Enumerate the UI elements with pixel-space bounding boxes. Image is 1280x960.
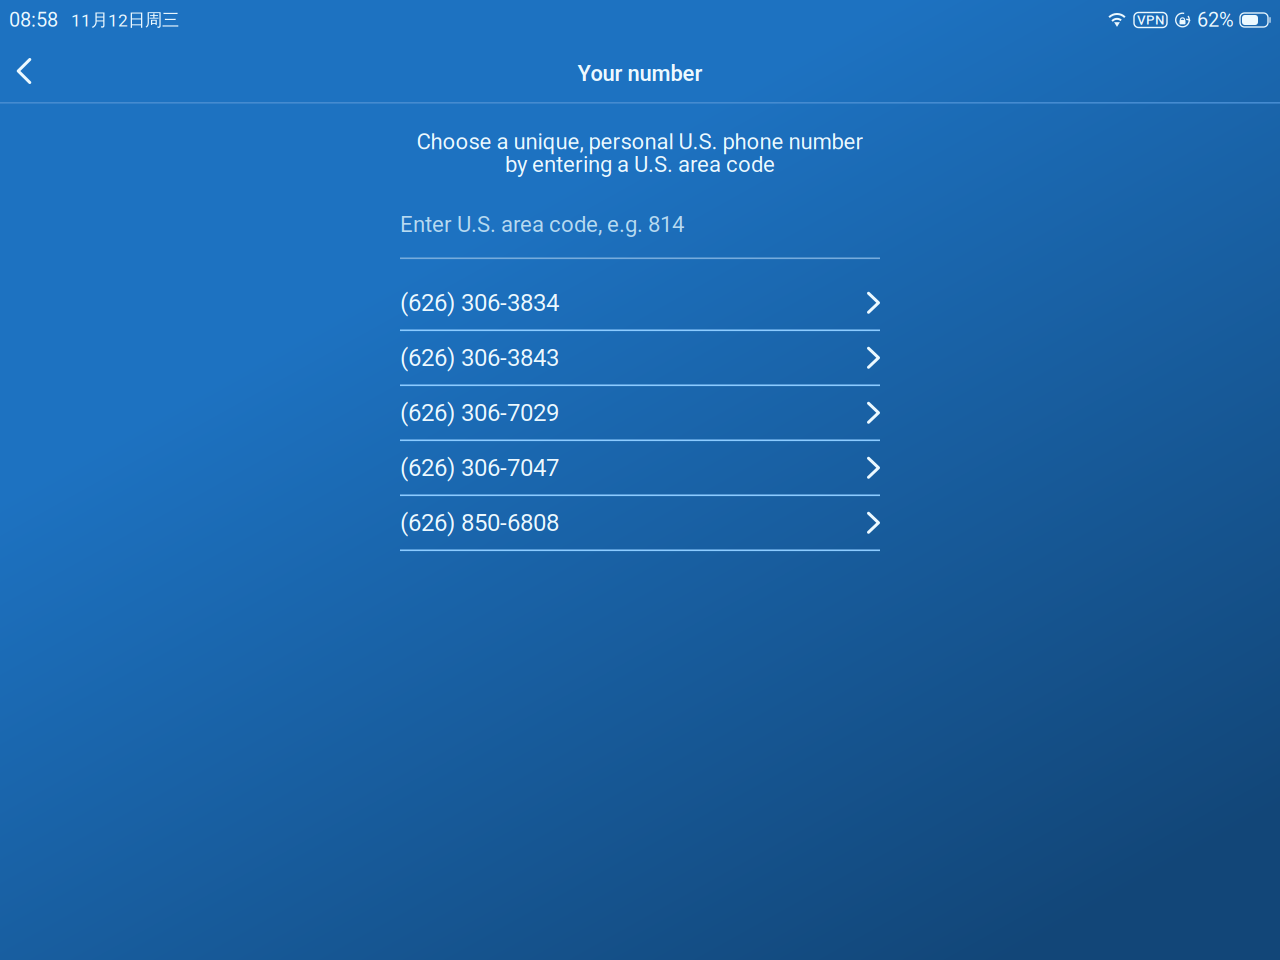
staticText: 62% <box>1197 8 1234 32</box>
staticText: (626) 306-7029 <box>400 399 559 427</box>
staticText: (626) 306-3834 <box>400 289 559 317</box>
staticText: by entering a U.S. area code <box>505 151 775 177</box>
button[interactable]: (626) 306-7029 <box>400 386 880 439</box>
staticText: 11月12日周三 <box>71 9 179 31</box>
button[interactable]: (626) 850-6808 <box>400 496 880 549</box>
button[interactable]: (626) 306-3843 <box>400 331 880 384</box>
staticText: Choose a unique, personal U.S. phone num… <box>416 129 863 154</box>
staticText: (626) 306-3843 <box>400 344 559 372</box>
staticText: (626) 306-7047 <box>400 454 559 482</box>
staticText: Enter U.S. area code, e.g. 814 <box>400 211 684 237</box>
staticText: 08:58 <box>9 8 58 32</box>
staticText: (626) 850-6808 <box>400 509 559 537</box>
button[interactable]: Back <box>0 40 48 102</box>
staticText: Your number <box>577 61 702 86</box>
button[interactable]: (626) 306-7047 <box>400 441 880 494</box>
staticText: VPN <box>1137 12 1164 28</box>
button[interactable]: (626) 306-3834 <box>400 276 880 329</box>
